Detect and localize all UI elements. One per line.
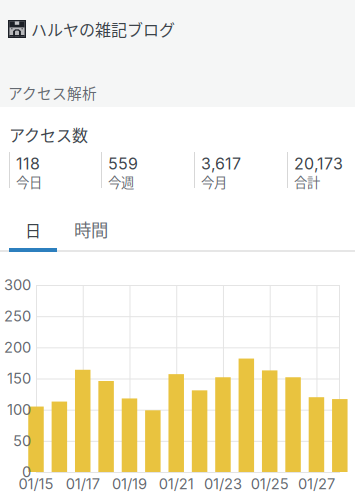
button[interactable]: ハルヤの雑記ブログ [0,7,355,51]
staticText: 01/27 [298,475,335,493]
staticText: 01/23 [204,475,242,493]
staticText: 今日 [16,172,42,191]
staticText: 01/25 [251,475,289,493]
staticText: 20,173 [294,154,343,173]
staticText: 3,617 [201,154,241,173]
staticText: 今月 [201,172,227,191]
staticText: 100 [7,401,31,418]
staticText: ハルヤの雑記ブログ [31,17,175,41]
staticText: 559 [108,154,138,173]
staticText: 200 [4,338,31,356]
button[interactable]: 日 [9,209,57,251]
staticText: 合計 [294,172,320,191]
staticText: 01/17 [66,475,100,493]
staticText: 118 [16,154,40,173]
staticText: 今週 [108,172,134,191]
staticText: 時間 [74,216,108,242]
staticText: 300 [4,276,31,294]
button[interactable]: 時間 [61,208,121,250]
staticText: 01/21 [159,475,194,493]
staticText: 01/19 [112,475,147,493]
staticText: 50 [13,432,31,450]
staticText: 01/15 [18,475,53,493]
staticText: アクセス数 [9,123,88,146]
staticText: 日 [25,218,41,242]
staticText: 150 [7,370,31,387]
staticText: 250 [4,307,31,325]
staticText: 0 [22,463,31,481]
staticText: アクセス解析 [8,82,97,103]
